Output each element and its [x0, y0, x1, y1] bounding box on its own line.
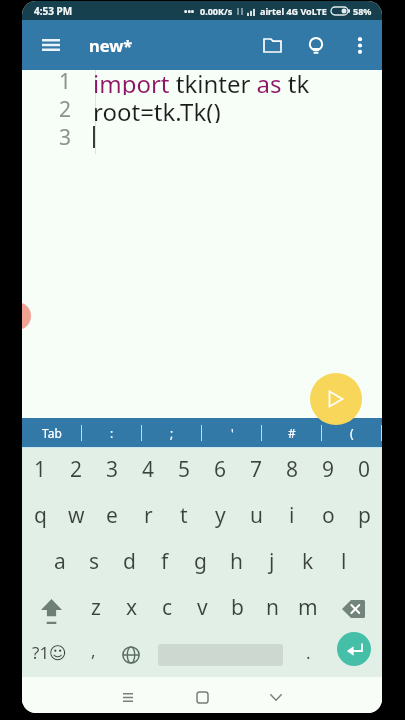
- staticText: m: [298, 593, 318, 622]
- staticText: h: [230, 547, 243, 576]
- button[interactable]: Run: [310, 373, 362, 425]
- staticText: n: [266, 593, 279, 622]
- button[interactable]: d: [112, 540, 147, 586]
- staticText: 1: [34, 455, 47, 484]
- button[interactable]: Recent apps: [106, 679, 150, 713]
- button[interactable]: Open file: [250, 23, 294, 67]
- button[interactable]: o: [310, 494, 346, 540]
- button[interactable]: 9: [310, 448, 346, 494]
- staticText: root=tk.Tk(): [93, 95, 221, 123]
- button[interactable]: :: [82, 418, 142, 447]
- staticText: 3: [106, 455, 119, 484]
- staticText: #: [288, 425, 296, 441]
- button[interactable]: t: [166, 494, 202, 540]
- staticText: c: [162, 593, 173, 622]
- staticText: .: [306, 641, 311, 664]
- staticText: u: [250, 501, 263, 530]
- staticText: new*: [89, 34, 133, 56]
- button[interactable]: m: [290, 586, 325, 632]
- button[interactable]: 3: [94, 448, 130, 494]
- staticText: d: [123, 547, 136, 576]
- staticText: 2: [70, 455, 83, 484]
- button[interactable]: 4: [130, 448, 166, 494]
- button[interactable]: ;: [142, 418, 202, 447]
- staticText: 4:53 PM: [34, 4, 73, 18]
- button[interactable]: ,: [76, 632, 111, 677]
- button[interactable]: e: [94, 494, 130, 540]
- staticText: airtel 4G VoLTE: [260, 5, 327, 17]
- button[interactable]: 7: [238, 448, 274, 494]
- staticText: r: [144, 501, 153, 530]
- staticText: 0.00K/s: [200, 5, 233, 17]
- staticText: ,: [91, 639, 96, 662]
- button[interactable]: #: [262, 418, 322, 447]
- staticText: p: [358, 501, 371, 530]
- button[interactable]: Navigation menu: [30, 24, 72, 66]
- button[interactable]: w: [58, 494, 94, 540]
- button[interactable]: Tips: [294, 23, 338, 67]
- button[interactable]: 8: [274, 448, 310, 494]
- staticText: f: [161, 547, 169, 576]
- button[interactable]: Back: [254, 679, 298, 713]
- staticText: 7: [250, 455, 263, 484]
- button[interactable]: k: [290, 540, 326, 586]
- staticText: k: [302, 547, 314, 576]
- staticText: (: [350, 425, 354, 441]
- staticText: ;: [170, 425, 174, 441]
- button[interactable]: Enter: [326, 632, 382, 677]
- button[interactable]: c: [150, 586, 185, 632]
- button[interactable]: u: [238, 494, 274, 540]
- staticText: x: [126, 593, 138, 622]
- button[interactable]: ': [202, 418, 262, 447]
- staticText: 1: [59, 67, 72, 95]
- staticText: q: [34, 501, 47, 530]
- staticText: 5: [178, 455, 191, 484]
- button[interactable]: (: [322, 418, 382, 447]
- button[interactable]: Change language: [111, 632, 150, 677]
- staticText: j: [269, 547, 275, 576]
- button[interactable]: 5: [166, 448, 202, 494]
- button[interactable]: v: [185, 586, 220, 632]
- button[interactable]: [150, 632, 290, 677]
- button[interactable]: More options: [338, 23, 382, 67]
- staticText: z: [91, 593, 101, 622]
- staticText: e: [106, 501, 118, 530]
- button[interactable]: 6: [202, 448, 238, 494]
- staticText: g: [194, 547, 207, 576]
- button[interactable]: b: [220, 586, 255, 632]
- staticText: b: [231, 593, 244, 622]
- button[interactable]: Tab: [22, 418, 82, 447]
- button[interactable]: .: [290, 632, 326, 677]
- staticText: •••: [184, 5, 195, 17]
- button[interactable]: 1: [22, 448, 58, 494]
- button[interactable]: f: [147, 540, 182, 586]
- button[interactable]: n: [255, 586, 290, 632]
- staticText: l: [341, 547, 347, 576]
- staticText: 8: [286, 455, 299, 484]
- button[interactable]: Backspace: [325, 586, 382, 632]
- button[interactable]: z: [78, 586, 114, 632]
- staticText: v: [197, 593, 208, 622]
- button[interactable]: x: [114, 586, 150, 632]
- button[interactable]: s: [77, 540, 112, 586]
- staticText: y: [215, 501, 226, 530]
- staticText: 58%: [353, 5, 372, 17]
- button[interactable]: ?1☺: [22, 632, 76, 677]
- button[interactable]: y: [202, 494, 238, 540]
- button[interactable]: g: [182, 540, 218, 586]
- staticText: i: [289, 501, 295, 530]
- button[interactable]: j: [254, 540, 290, 586]
- button[interactable]: Home: [180, 679, 224, 713]
- button[interactable]: l: [326, 540, 362, 586]
- button[interactable]: h: [218, 540, 254, 586]
- button[interactable]: 2: [58, 448, 94, 494]
- button[interactable]: p: [346, 494, 382, 540]
- button[interactable]: q: [22, 494, 58, 540]
- button[interactable]: Shift: [22, 586, 78, 632]
- button[interactable]: i: [274, 494, 310, 540]
- button[interactable]: 0: [346, 448, 382, 494]
- button[interactable]: a: [42, 540, 77, 586]
- staticText: 6: [214, 455, 227, 484]
- button[interactable]: r: [130, 494, 166, 540]
- staticText: 9: [322, 455, 335, 484]
